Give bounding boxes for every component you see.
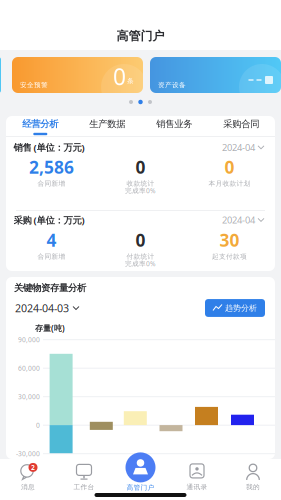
staticText: 90,000: [18, 335, 40, 344]
button[interactable]: 趋势分析: [205, 299, 265, 317]
staticText: 0: [224, 155, 234, 178]
button[interactable]: 工作台: [73, 463, 94, 491]
staticText: 条: [127, 77, 134, 85]
staticText: 起支付款项: [212, 252, 247, 261]
staticText: 销售 (单位：万元): [13, 141, 84, 153]
button[interactable]: 2: [18, 463, 37, 491]
staticText: 付款统计: [126, 252, 154, 261]
button[interactable]: 销售业务: [141, 115, 208, 139]
staticText: 安全预警: [20, 81, 48, 89]
staticText: 采购合同: [223, 118, 259, 130]
staticText: 完成率0%: [125, 259, 156, 268]
staticText: 经营分析: [22, 118, 58, 130]
staticText: 2024-04: [222, 214, 255, 226]
button[interactable]: 经营分析: [7, 115, 74, 139]
staticText: 60,000: [18, 364, 40, 373]
staticText: 高管门户: [116, 29, 164, 43]
button[interactable]: 生产数据: [74, 115, 141, 139]
button[interactable]: 2024-04: [222, 212, 264, 228]
staticText: 30,000: [18, 392, 40, 401]
button[interactable]: 资产设备: [150, 57, 281, 93]
button[interactable]: 通讯录: [186, 463, 207, 491]
staticText: 2: [31, 463, 35, 472]
staticText: 合同新增: [37, 252, 65, 261]
staticText: 4: [46, 228, 56, 251]
staticText: -30,000: [16, 449, 40, 458]
staticText: 我的: [246, 483, 260, 491]
staticText: 0: [135, 228, 145, 251]
staticText: 2,586: [29, 155, 74, 178]
staticText: 2024-04: [222, 141, 255, 153]
staticText: 0: [36, 421, 40, 430]
staticText: 工作台: [73, 483, 94, 491]
staticText: 关键物资存量分析: [14, 282, 86, 294]
button[interactable]: 高管门户: [125, 452, 155, 492]
staticText: 资产设备: [158, 81, 186, 89]
button[interactable]: 我的: [243, 463, 262, 491]
staticText: 完成率0%: [125, 186, 156, 195]
staticText: 采购 (单位：万元): [13, 214, 84, 226]
button[interactable]: 2024-04-03: [15, 299, 79, 317]
button[interactable]: 安全预警: [12, 57, 143, 93]
staticText: 销售业务: [156, 118, 192, 130]
staticText: 0: [135, 155, 145, 178]
staticText: 高管门户: [126, 483, 154, 492]
staticText: 趋势分析: [225, 303, 257, 313]
staticText: 2024-04-03: [15, 301, 69, 315]
staticText: 消息: [21, 483, 35, 491]
staticText: 0: [113, 61, 126, 91]
staticText: 合同新增: [37, 179, 65, 188]
staticText: 生产数据: [89, 118, 125, 130]
button[interactable]: 采购合同: [208, 115, 275, 139]
staticText: 通讯录: [186, 483, 207, 491]
staticText: 收款统计: [126, 179, 154, 188]
button[interactable]: 2024-04: [222, 139, 264, 155]
staticText: 30: [219, 228, 239, 251]
staticText: 存量(吨): [35, 323, 65, 333]
staticText: 本月收款计划: [208, 179, 250, 188]
